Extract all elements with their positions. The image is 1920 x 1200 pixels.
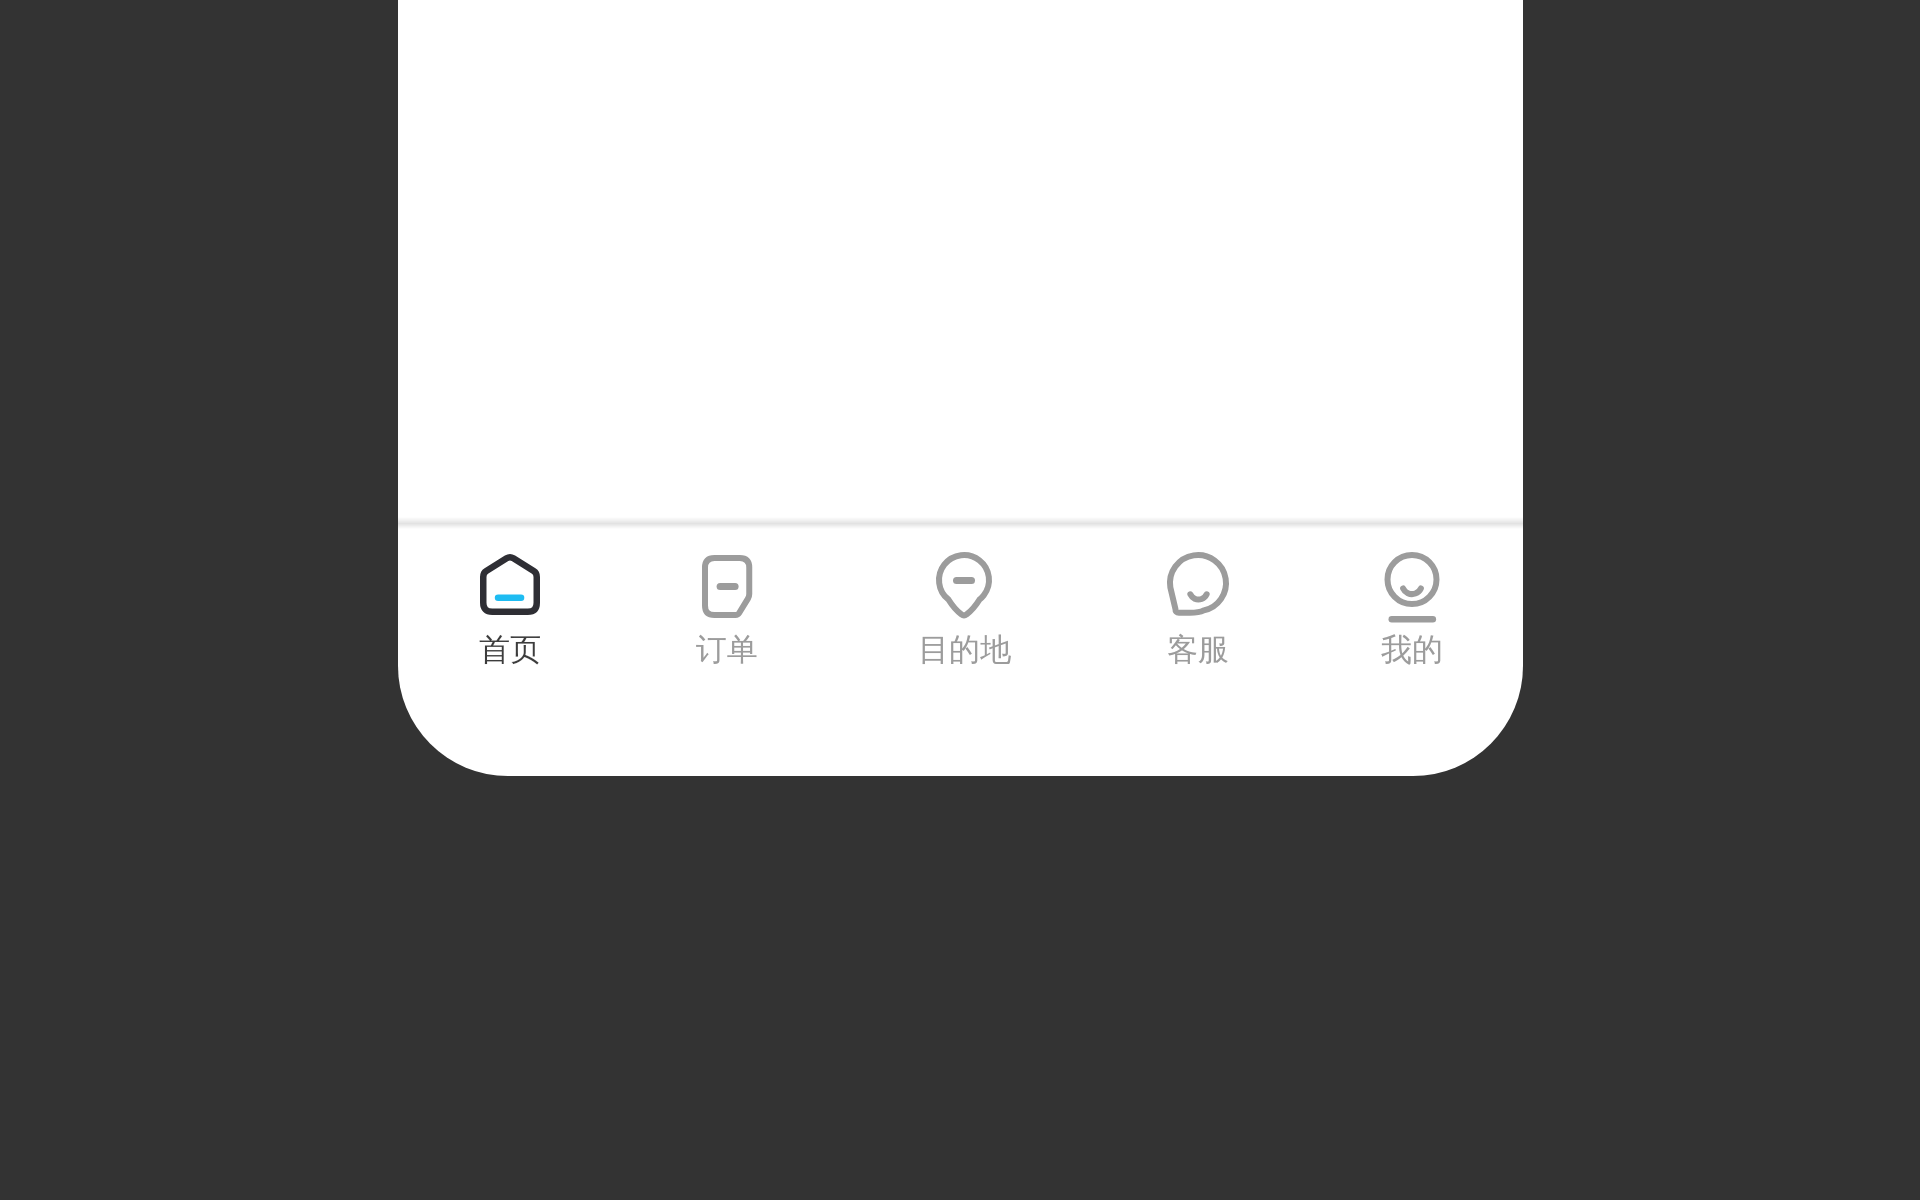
button[interactable]: 订单 [637, 527, 817, 700]
button[interactable]: 客服 [1108, 527, 1288, 700]
button[interactable]: 目的地 [874, 527, 1054, 700]
staticText: 客服 [1167, 630, 1229, 669]
staticText: 我的 [1381, 630, 1443, 669]
button[interactable]: 首页 [420, 527, 600, 700]
staticText: 订单 [696, 630, 758, 669]
staticText: 首页 [479, 630, 541, 669]
staticText: 目的地 [918, 630, 1011, 669]
button[interactable]: 我的 [1322, 527, 1502, 700]
